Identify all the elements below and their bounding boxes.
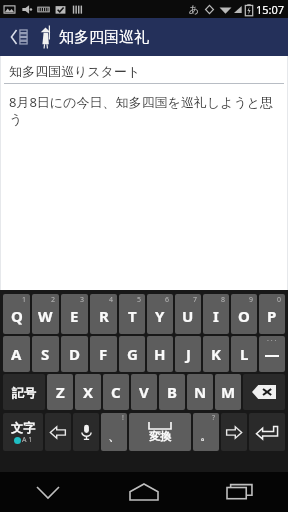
- button[interactable]: 1: [3, 294, 30, 334]
- staticText: 。: [200, 427, 213, 443]
- staticText: 、: [108, 427, 121, 443]
- staticText: E: [70, 306, 79, 326]
- button[interactable]: N: [187, 374, 213, 410]
- button[interactable]: H: [147, 336, 173, 372]
- staticText: F: [99, 344, 108, 364]
- staticText: H: [154, 344, 166, 364]
- staticText: 8: [221, 295, 226, 305]
- staticText: J: [186, 344, 191, 364]
- staticText: 2: [51, 295, 56, 305]
- button[interactable]: Voice input: [73, 413, 99, 451]
- staticText: Y: [155, 306, 165, 326]
- staticText: O: [238, 306, 250, 326]
- button[interactable]: K: [203, 336, 229, 372]
- staticText: D: [69, 344, 80, 364]
- button[interactable]: 8月8日にの今日、知多四国を巡礼しようと思う: [4, 92, 284, 290]
- staticText: C: [111, 382, 121, 402]
- staticText: X: [83, 382, 94, 402]
- staticText: 15:07: [256, 2, 285, 17]
- button[interactable]: 0: [259, 294, 285, 334]
- button[interactable]: 文字: [3, 413, 43, 451]
- staticText: T: [128, 306, 137, 326]
- button[interactable]: !: [101, 413, 127, 451]
- button[interactable]: 2: [32, 294, 59, 334]
- button[interactable]: 変換: [129, 413, 191, 451]
- button[interactable]: Hide keyboard: [0, 472, 96, 512]
- button[interactable]: A: [3, 336, 30, 372]
- staticText: W: [38, 306, 53, 326]
- button[interactable]: 9: [231, 294, 257, 334]
- staticText: M: [221, 382, 236, 402]
- staticText: Z: [56, 382, 65, 402]
- staticText: A: [11, 344, 22, 364]
- staticText: U: [182, 306, 194, 326]
- staticText: L: [240, 344, 249, 364]
- staticText: 1: [22, 295, 27, 305]
- staticText: Q: [11, 306, 23, 326]
- button[interactable]: V: [131, 374, 157, 410]
- button[interactable]: S: [32, 336, 59, 372]
- button[interactable]: 3: [61, 294, 88, 334]
- button[interactable]: M: [215, 374, 241, 410]
- button[interactable]: F: [90, 336, 117, 372]
- button[interactable]: Home: [96, 472, 192, 512]
- staticText: !: [122, 413, 124, 423]
- button[interactable]: 8: [203, 294, 229, 334]
- button[interactable]: 記号: [3, 374, 45, 410]
- button[interactable]: Cursor left: [45, 413, 71, 451]
- button[interactable]: 5: [119, 294, 145, 334]
- staticText: ?: [212, 413, 216, 423]
- staticText: K: [211, 344, 221, 364]
- staticText: A 1: [22, 435, 33, 445]
- button[interactable]: Backspace: [243, 374, 285, 410]
- staticText: 変換: [149, 429, 171, 443]
- button[interactable]: Enter: [249, 413, 285, 451]
- button[interactable]: · · ·: [259, 336, 285, 372]
- staticText: あ: [189, 3, 200, 16]
- button[interactable]: Recents: [192, 472, 288, 512]
- staticText: 3: [80, 295, 85, 305]
- staticText: 5: [137, 295, 142, 305]
- staticText: N: [194, 382, 207, 402]
- button[interactable]: L: [231, 336, 257, 372]
- staticText: B: [167, 382, 177, 402]
- button[interactable]: B: [159, 374, 185, 410]
- staticText: 7: [193, 295, 198, 305]
- staticText: 8月8日にの今日、知多四国を巡礼しようと思う: [9, 93, 284, 128]
- staticText: I: [213, 306, 219, 326]
- button[interactable]: 4: [90, 294, 117, 334]
- button[interactable]: C: [103, 374, 129, 410]
- button[interactable]: 知多四国巡りスタート: [4, 59, 284, 83]
- button[interactable]: J: [175, 336, 201, 372]
- button[interactable]: G: [119, 336, 145, 372]
- staticText: 6: [165, 295, 170, 305]
- staticText: P: [267, 306, 277, 326]
- staticText: 9: [249, 295, 254, 305]
- staticText: 0: [277, 295, 282, 305]
- button[interactable]: D: [61, 336, 88, 372]
- staticText: S: [41, 344, 50, 364]
- staticText: 文字: [11, 420, 35, 435]
- button[interactable]: Z: [47, 374, 73, 410]
- staticText: 4: [109, 295, 114, 305]
- button[interactable]: Cursor right: [221, 413, 247, 451]
- button[interactable]: 7: [175, 294, 201, 334]
- button[interactable]: 6: [147, 294, 173, 334]
- button[interactable]: Back: [0, 18, 38, 56]
- staticText: 知多四国巡礼: [59, 28, 149, 47]
- staticText: V: [139, 382, 149, 402]
- button[interactable]: ?: [193, 413, 219, 451]
- staticText: 記号: [12, 385, 36, 400]
- staticText: · · ·: [267, 336, 277, 346]
- staticText: R: [99, 306, 109, 326]
- button[interactable]: X: [75, 374, 101, 410]
- staticText: 知多四国巡りスタート: [9, 63, 141, 79]
- staticText: G: [127, 344, 138, 364]
